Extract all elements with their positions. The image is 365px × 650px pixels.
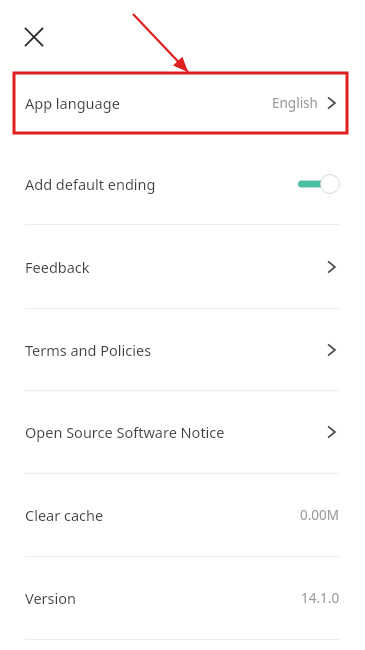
staticText: Open Source Software Notice [25, 422, 225, 442]
button[interactable]: Add default ending toggle [296, 172, 340, 196]
staticText: Feedback [25, 257, 90, 277]
staticText: 0.00M [300, 506, 340, 524]
button[interactable]: Open Source Software Notice [0, 391, 365, 473]
staticText: 14.1.0 [301, 589, 340, 607]
button[interactable]: Add default ending [0, 155, 365, 213]
button[interactable]: App language [0, 73, 365, 133]
button[interactable]: Clear cache [0, 474, 365, 556]
button[interactable]: Version [0, 557, 365, 639]
staticText: Add default ending [25, 174, 156, 194]
staticText: Clear cache [25, 505, 104, 525]
staticText: English [272, 94, 318, 112]
staticText: App language [25, 93, 120, 113]
staticText: Version [25, 588, 76, 608]
button[interactable]: Terms and Policies [0, 309, 365, 390]
staticText: Terms and Policies [25, 340, 152, 360]
button[interactable]: Feedback [0, 225, 365, 308]
button[interactable]: Close [0, 0, 72, 73]
